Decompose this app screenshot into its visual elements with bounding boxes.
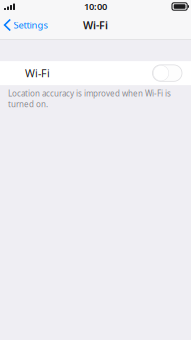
staticText: Location accuracy is improved when Wi-Fi…	[8, 88, 171, 109]
button[interactable]: Settings	[0, 14, 51, 36]
staticText: Wi-Fi	[83, 18, 108, 32]
staticText: Wi-Fi	[25, 66, 50, 80]
button[interactable]: Wi-Fi	[0, 61, 191, 85]
staticText: 10:00	[84, 0, 107, 13]
staticText: Settings	[13, 19, 47, 31]
